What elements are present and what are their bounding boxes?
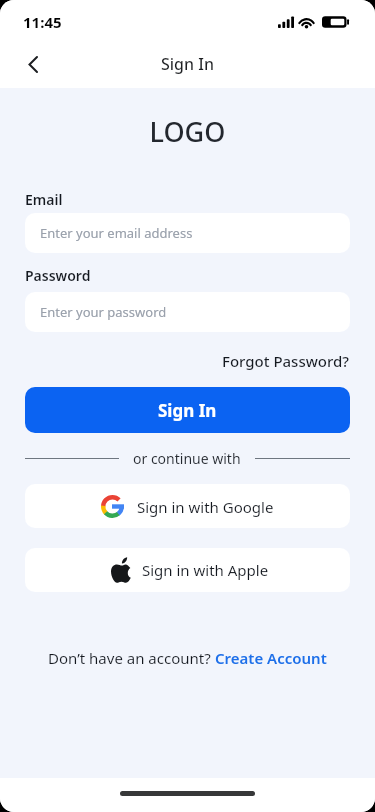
staticText: 11:45 bbox=[23, 12, 62, 32]
staticText: Enter your password bbox=[40, 303, 167, 321]
staticText: Create Account bbox=[215, 648, 327, 668]
staticText: Sign in with Apple bbox=[142, 560, 269, 580]
staticText: Sign In bbox=[158, 399, 217, 422]
staticText: Email bbox=[25, 190, 63, 209]
button[interactable]: Sign in with Apple bbox=[25, 548, 350, 592]
button[interactable]: Enter your password bbox=[25, 292, 350, 332]
staticText: or continue with bbox=[133, 449, 241, 468]
button[interactable]: Enter your email address bbox=[25, 213, 350, 253]
button[interactable]: Forgot Password? bbox=[222, 351, 350, 371]
staticText: Enter your email address bbox=[40, 224, 193, 242]
button[interactable] bbox=[20, 52, 44, 76]
staticText: Sign in with Google bbox=[137, 497, 274, 517]
staticText: Don’t have an account? bbox=[48, 648, 215, 668]
staticText: LOGO bbox=[25, 113, 350, 150]
button[interactable]: Don’t have an account? bbox=[25, 648, 350, 668]
staticText: Sign In bbox=[161, 53, 214, 75]
button[interactable]: Sign In bbox=[25, 387, 350, 433]
staticText: Forgot Password? bbox=[222, 351, 350, 371]
staticText: Password bbox=[25, 266, 91, 285]
button[interactable]: Sign in with Google bbox=[25, 484, 350, 528]
